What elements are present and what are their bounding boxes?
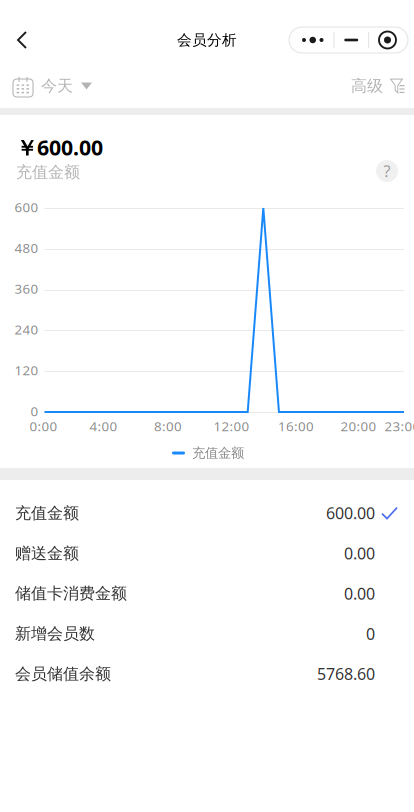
staticText: 8:00: [154, 417, 182, 435]
staticText: 0: [30, 402, 38, 420]
staticText: 0.00: [344, 543, 375, 564]
staticText: 高级: [351, 76, 383, 96]
staticText: 480: [14, 239, 38, 257]
staticText: 12:00: [213, 417, 249, 435]
staticText: 赠送金额: [15, 543, 79, 563]
staticText: 360: [14, 280, 38, 297]
staticText: ￥600.00: [16, 133, 103, 161]
staticText: 20:00: [340, 417, 376, 435]
staticText: 120: [14, 361, 38, 379]
staticText: 新增会员数: [15, 624, 95, 644]
button[interactable]: More options: [289, 27, 408, 53]
button[interactable]: Back: [0, 18, 44, 62]
button[interactable]: 赠送金额: [0, 533, 414, 573]
staticText: 4:00: [89, 417, 117, 435]
staticText: 16:00: [278, 417, 314, 435]
staticText: ?: [383, 160, 390, 182]
staticText: 0.00: [344, 583, 375, 604]
staticText: 0: [366, 623, 375, 644]
staticText: 5768.60: [317, 663, 375, 684]
staticText: 600: [14, 198, 38, 216]
staticText: 23:00: [384, 417, 414, 435]
staticText: 充值金额: [15, 503, 79, 523]
staticText: 0:00: [29, 417, 57, 435]
button[interactable]: 今天: [0, 64, 104, 108]
staticText: 充值金额: [192, 445, 244, 461]
staticText: 充值金额: [16, 162, 80, 182]
staticText: 储值卡消费金额: [15, 584, 127, 603]
staticText: 会员分析: [177, 31, 237, 49]
staticText: 会员储值余额: [15, 664, 111, 684]
button[interactable]: 高级: [339, 64, 414, 108]
button[interactable]: 会员储值余额: [0, 654, 414, 694]
staticText: 240: [14, 320, 38, 338]
staticText: 600.00: [326, 502, 375, 524]
button[interactable]: Help: [376, 160, 398, 182]
button[interactable]: 新增会员数: [0, 614, 414, 654]
staticText: 今天: [41, 76, 73, 96]
button[interactable]: 充值金额: [0, 493, 414, 533]
button[interactable]: 储值卡消费金额: [0, 573, 414, 614]
